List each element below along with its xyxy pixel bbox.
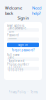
staticText: Forgot password?	[11, 48, 34, 52]
staticText: Phone number	[7, 63, 29, 66]
staticText: jane@example.com	[9, 26, 28, 33]
staticText: Sign in	[18, 43, 28, 47]
staticText: Privacy Policy · Terms	[8, 90, 37, 94]
staticText: Welcome back	[5, 5, 22, 16]
button[interactable]: +1 (555) 010-0199	[7, 67, 39, 70]
staticText: Password	[7, 33, 19, 37]
button[interactable]: Need help?	[32, 5, 41, 16]
staticText: Email address	[7, 24, 24, 27]
button[interactable]: Forgot password?	[7, 49, 39, 52]
button[interactable]: Sign in	[7, 43, 39, 47]
staticText: Need help?	[32, 5, 41, 16]
staticText: Jane Appleseed	[9, 56, 25, 63]
staticText: +1 (555) 010-0199	[9, 65, 24, 72]
button[interactable]: ••••••••	[7, 37, 39, 41]
staticText: Sign in	[17, 15, 28, 21]
staticText: Full name	[7, 53, 20, 57]
button[interactable]: jane@example.com	[7, 28, 39, 32]
button[interactable]: Jane Appleseed	[7, 57, 39, 61]
staticText: ••••••••	[9, 37, 17, 41]
